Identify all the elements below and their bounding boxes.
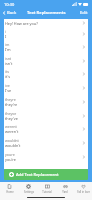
button[interactable]: Home: [0, 182, 19, 195]
button[interactable]: werent: [4, 122, 88, 136]
staticText: theyve: [5, 111, 17, 116]
button[interactable]: theyre: [4, 95, 88, 109]
staticText: they're: [5, 102, 18, 107]
button[interactable]: Tutorial: [38, 182, 56, 195]
staticText: Settings: [24, 190, 34, 194]
staticText: Tutorial: [42, 190, 52, 194]
staticText: Text Replacements: [27, 10, 66, 16]
staticText: Hey! How are you?: [5, 21, 38, 26]
staticText: werent: [5, 124, 17, 129]
button[interactable]: youre: [4, 150, 88, 164]
staticText: wouldnt: [5, 138, 19, 143]
staticText: im: [5, 42, 10, 47]
staticText: I: [5, 34, 7, 39]
staticText: I'm: [5, 47, 11, 52]
staticText: you're: [5, 157, 16, 162]
staticText: theyre: [5, 97, 16, 102]
staticText: weren't: [5, 129, 19, 134]
staticText: i: [5, 29, 6, 34]
button[interactable]: Edit: [80, 10, 92, 19]
staticText: I've: [5, 88, 12, 93]
staticText: its: [5, 69, 9, 74]
staticText: isnt: [5, 56, 12, 61]
button[interactable]: Hey! How are you?: [4, 19, 88, 27]
staticText: Yard: [62, 190, 68, 194]
button[interactable]: Add Text Replacement: [4, 169, 88, 180]
staticText: Fall in love: [77, 190, 90, 194]
button[interactable]: theyve: [4, 109, 88, 122]
staticText: 10:30: [4, 2, 15, 7]
button[interactable]: Settings: [19, 182, 38, 195]
staticText: Home: [6, 190, 14, 194]
staticText: they've: [5, 116, 18, 121]
button[interactable]: Yard: [56, 182, 74, 195]
staticText: youre: [5, 152, 15, 157]
staticText: it's: [5, 74, 10, 79]
button[interactable]: its: [4, 67, 88, 81]
button[interactable]: Back: [2, 10, 17, 16]
staticText: wouldn't: [5, 143, 21, 148]
staticText: Add Text Replacement: [16, 172, 59, 177]
button[interactable]: Fall in love: [74, 182, 92, 195]
button[interactable]: wouldnt: [4, 136, 88, 150]
button[interactable]: i: [4, 27, 88, 40]
staticText: isn't: [5, 61, 13, 66]
button[interactable]: im: [4, 40, 88, 54]
staticText: ive: [5, 83, 10, 88]
button[interactable]: ive: [4, 81, 88, 95]
button[interactable]: isnt: [4, 54, 88, 67]
staticText: Back: [7, 10, 17, 16]
